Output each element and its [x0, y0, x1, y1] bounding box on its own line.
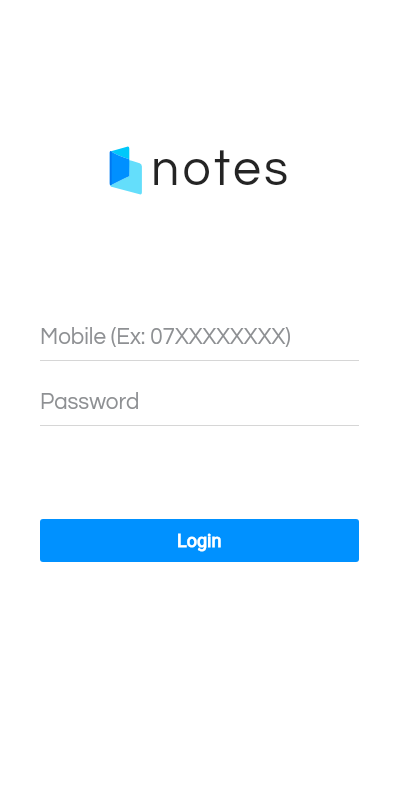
staticText: Password	[40, 391, 140, 414]
staticText: notes	[151, 144, 292, 196]
button[interactable]: Password	[40, 391, 359, 426]
staticText: Mobile (Ex: 07XXXXXXXX)	[40, 326, 291, 349]
other: notes logo	[108, 144, 144, 198]
button[interactable]: Mobile (Ex: 07XXXXXXXX)	[40, 326, 359, 361]
staticText: Login	[177, 530, 222, 551]
button[interactable]: Login	[40, 519, 359, 562]
